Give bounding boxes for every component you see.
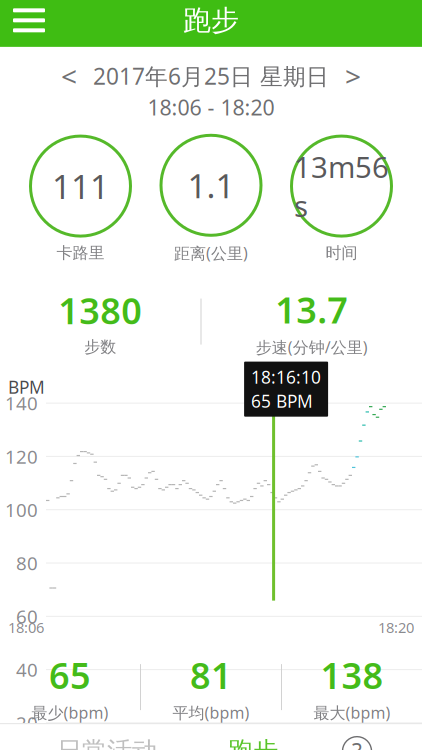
staticText: < bbox=[61, 57, 77, 94]
staticText: 2017年6月25日 星期日 bbox=[93, 61, 329, 91]
staticText: ? bbox=[352, 736, 362, 750]
staticText: 111 bbox=[52, 164, 109, 208]
staticText: 1380 bbox=[58, 286, 142, 334]
staticText: BPM bbox=[8, 376, 45, 399]
button[interactable]: Next day bbox=[333, 61, 373, 91]
staticText: 步速(分钟/公里) bbox=[256, 336, 368, 357]
staticText: 13m56s bbox=[294, 147, 389, 225]
staticText: 20 bbox=[16, 710, 38, 735]
staticText: > bbox=[345, 57, 361, 94]
staticText: 18:06 bbox=[8, 618, 44, 637]
staticText: 120 bbox=[5, 444, 38, 469]
staticText: 13.7 bbox=[275, 285, 348, 333]
staticText: 81 bbox=[190, 651, 232, 699]
staticText: 80 bbox=[16, 551, 38, 575]
staticText: 跑步 bbox=[183, 3, 239, 38]
staticText: 跑步 bbox=[228, 736, 278, 750]
button[interactable]: 跑步 bbox=[214, 729, 292, 750]
button[interactable]: Previous day bbox=[49, 61, 89, 91]
staticText: 18:06 - 18:20 bbox=[147, 93, 274, 121]
staticText: 时间 bbox=[325, 243, 357, 263]
staticText: 日常活动 bbox=[57, 736, 157, 750]
button[interactable]: Help bbox=[335, 729, 379, 750]
staticText: 40 bbox=[16, 657, 38, 682]
staticText: 最大(bpm) bbox=[313, 702, 390, 723]
button[interactable]: 日常活动 bbox=[43, 729, 171, 750]
staticText: 65 bbox=[49, 651, 91, 699]
button[interactable]: Menu bbox=[2, 0, 56, 42]
staticText: 100 bbox=[5, 497, 38, 522]
staticText: 65 BPM bbox=[251, 390, 313, 413]
staticText: 步数 bbox=[84, 337, 116, 357]
staticText: 平均(bpm) bbox=[172, 702, 249, 723]
staticText: 1.1 bbox=[187, 163, 234, 207]
staticText: 18:16:10 bbox=[251, 366, 321, 389]
staticText: 距离(公里) bbox=[174, 242, 248, 263]
staticText: 18:20 bbox=[378, 618, 414, 637]
staticText: 最少(bpm) bbox=[31, 702, 108, 723]
staticText: 60 bbox=[16, 604, 38, 629]
staticText: 140 bbox=[5, 391, 38, 415]
staticText: 138 bbox=[320, 651, 383, 699]
staticText: 卡路里 bbox=[56, 243, 104, 263]
